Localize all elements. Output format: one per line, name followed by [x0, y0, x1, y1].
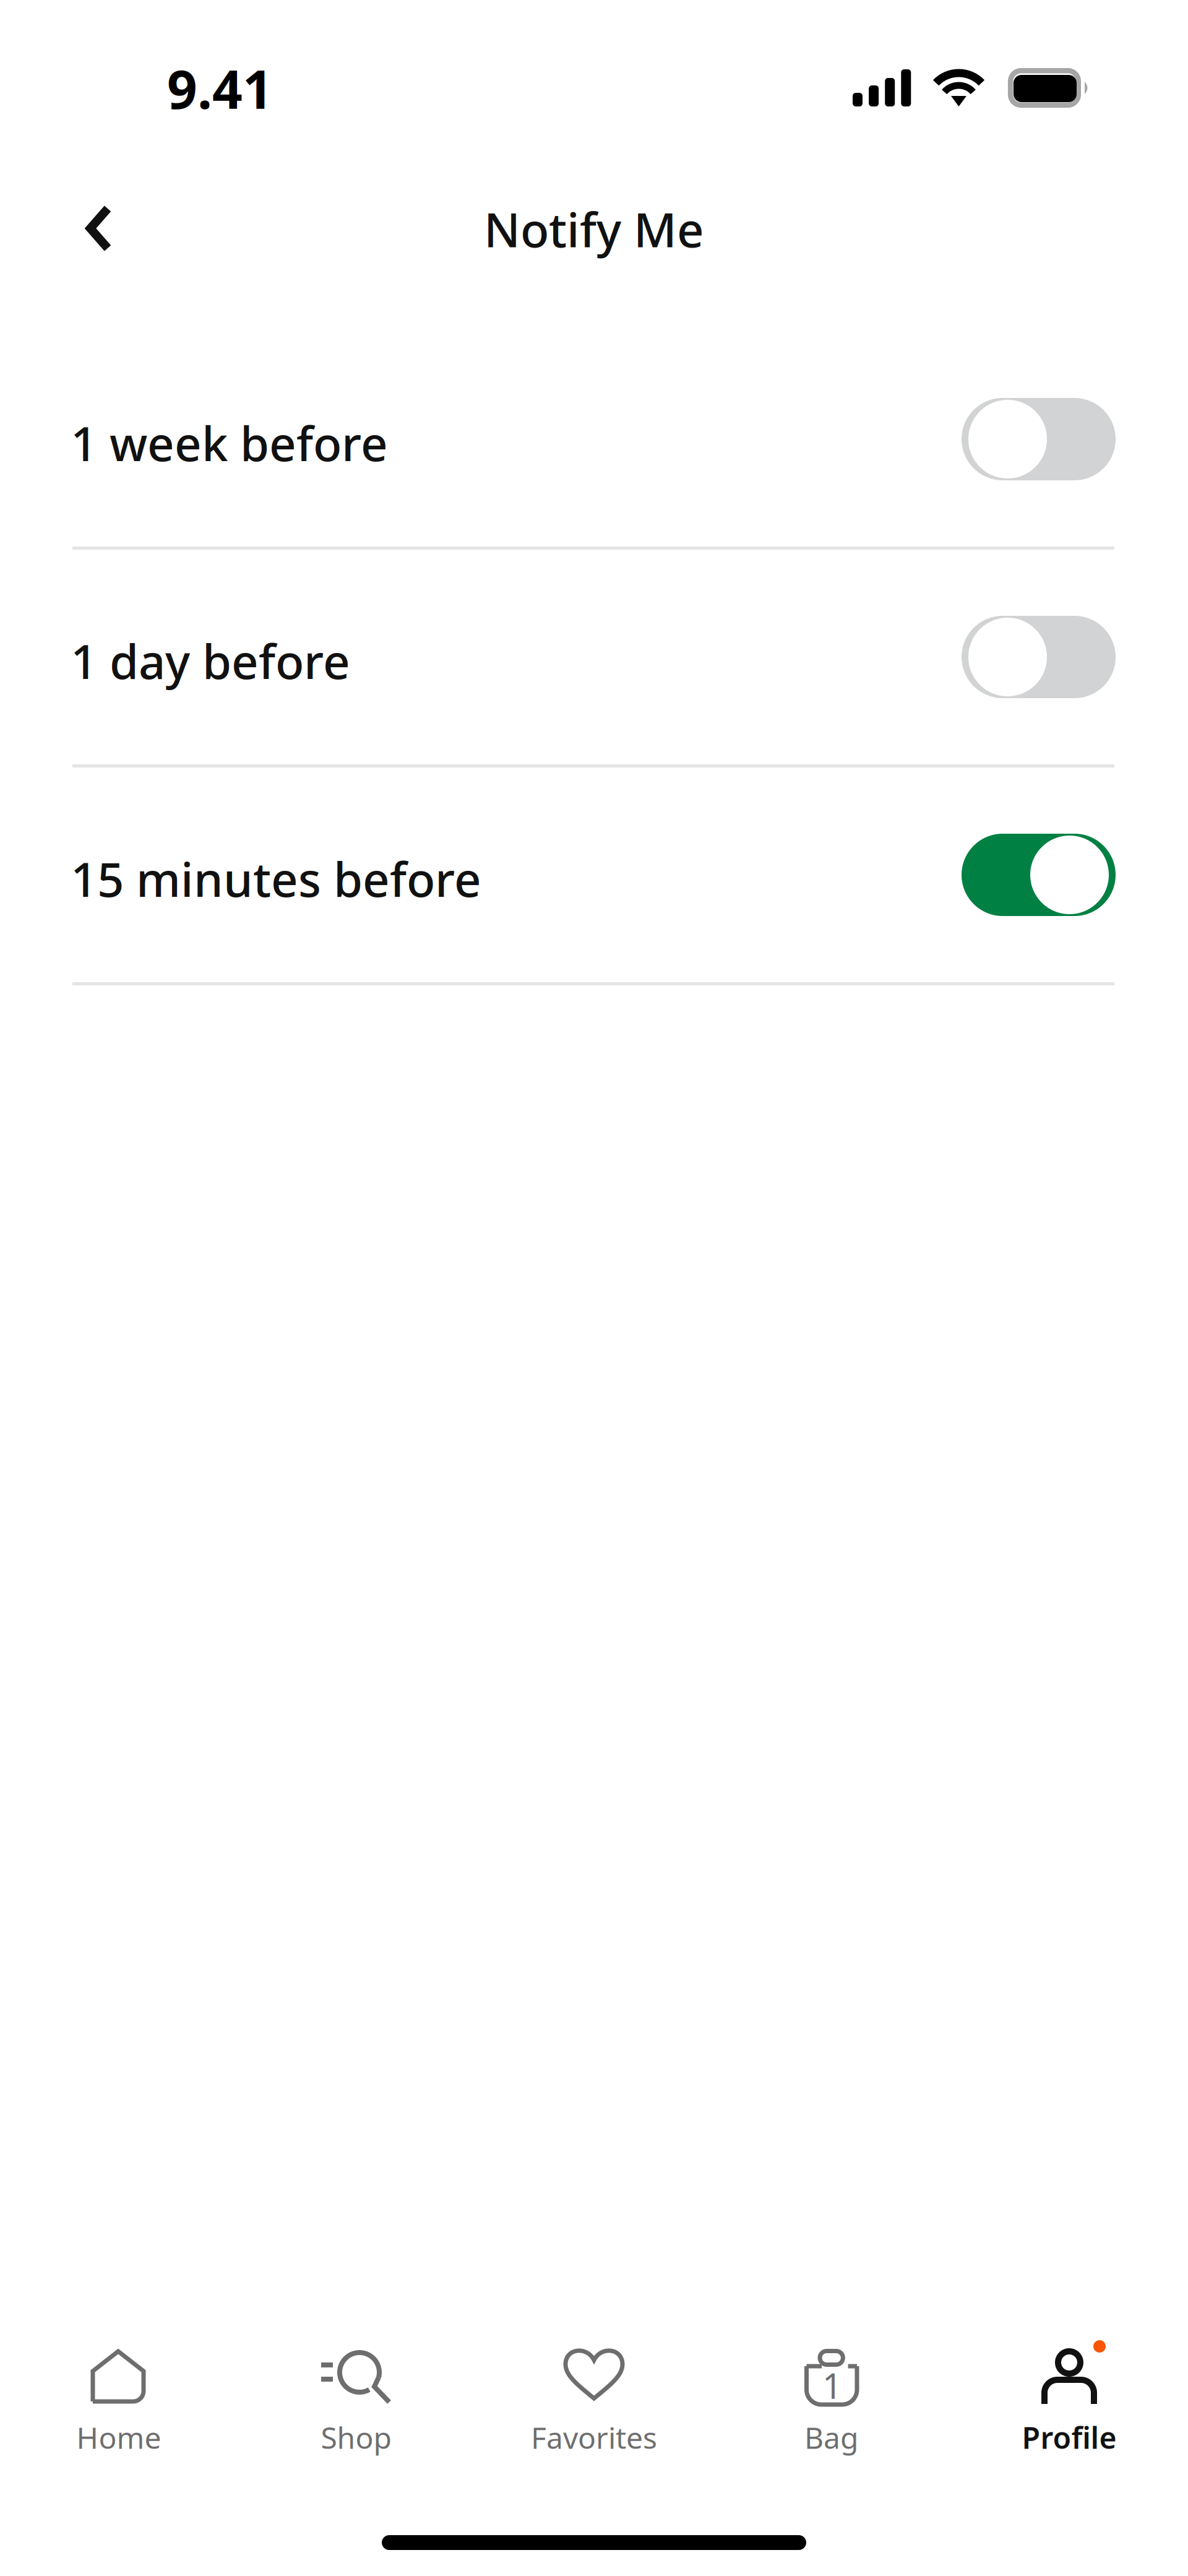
staticText: Favorites — [531, 2418, 657, 2457]
staticText: Home — [76, 2418, 161, 2457]
button[interactable]: Back — [57, 186, 141, 270]
staticText: 1 day before — [71, 629, 350, 692]
button[interactable]: Profile — [950, 2346, 1188, 2470]
staticText: 15 minutes before — [71, 847, 481, 910]
staticText: Bag — [804, 2418, 859, 2457]
staticText: Profile — [1022, 2418, 1117, 2457]
button[interactable]: 15 minutes before — [71, 767, 1113, 985]
button[interactable]: 1 week before — [71, 332, 1113, 550]
staticText: Notify Me — [484, 198, 704, 260]
button[interactable]: Favorites — [475, 2346, 713, 2470]
button[interactable]: 1 — [713, 2346, 950, 2470]
staticText: 1 week before — [71, 412, 388, 474]
button[interactable]: 1 day before — [71, 550, 1113, 767]
staticText: 1 — [822, 2362, 842, 2408]
button[interactable]: Home — [0, 2346, 238, 2470]
staticText: 9.41 — [167, 53, 273, 123]
staticText: Shop — [321, 2418, 392, 2457]
button[interactable]: Shop — [238, 2346, 475, 2470]
